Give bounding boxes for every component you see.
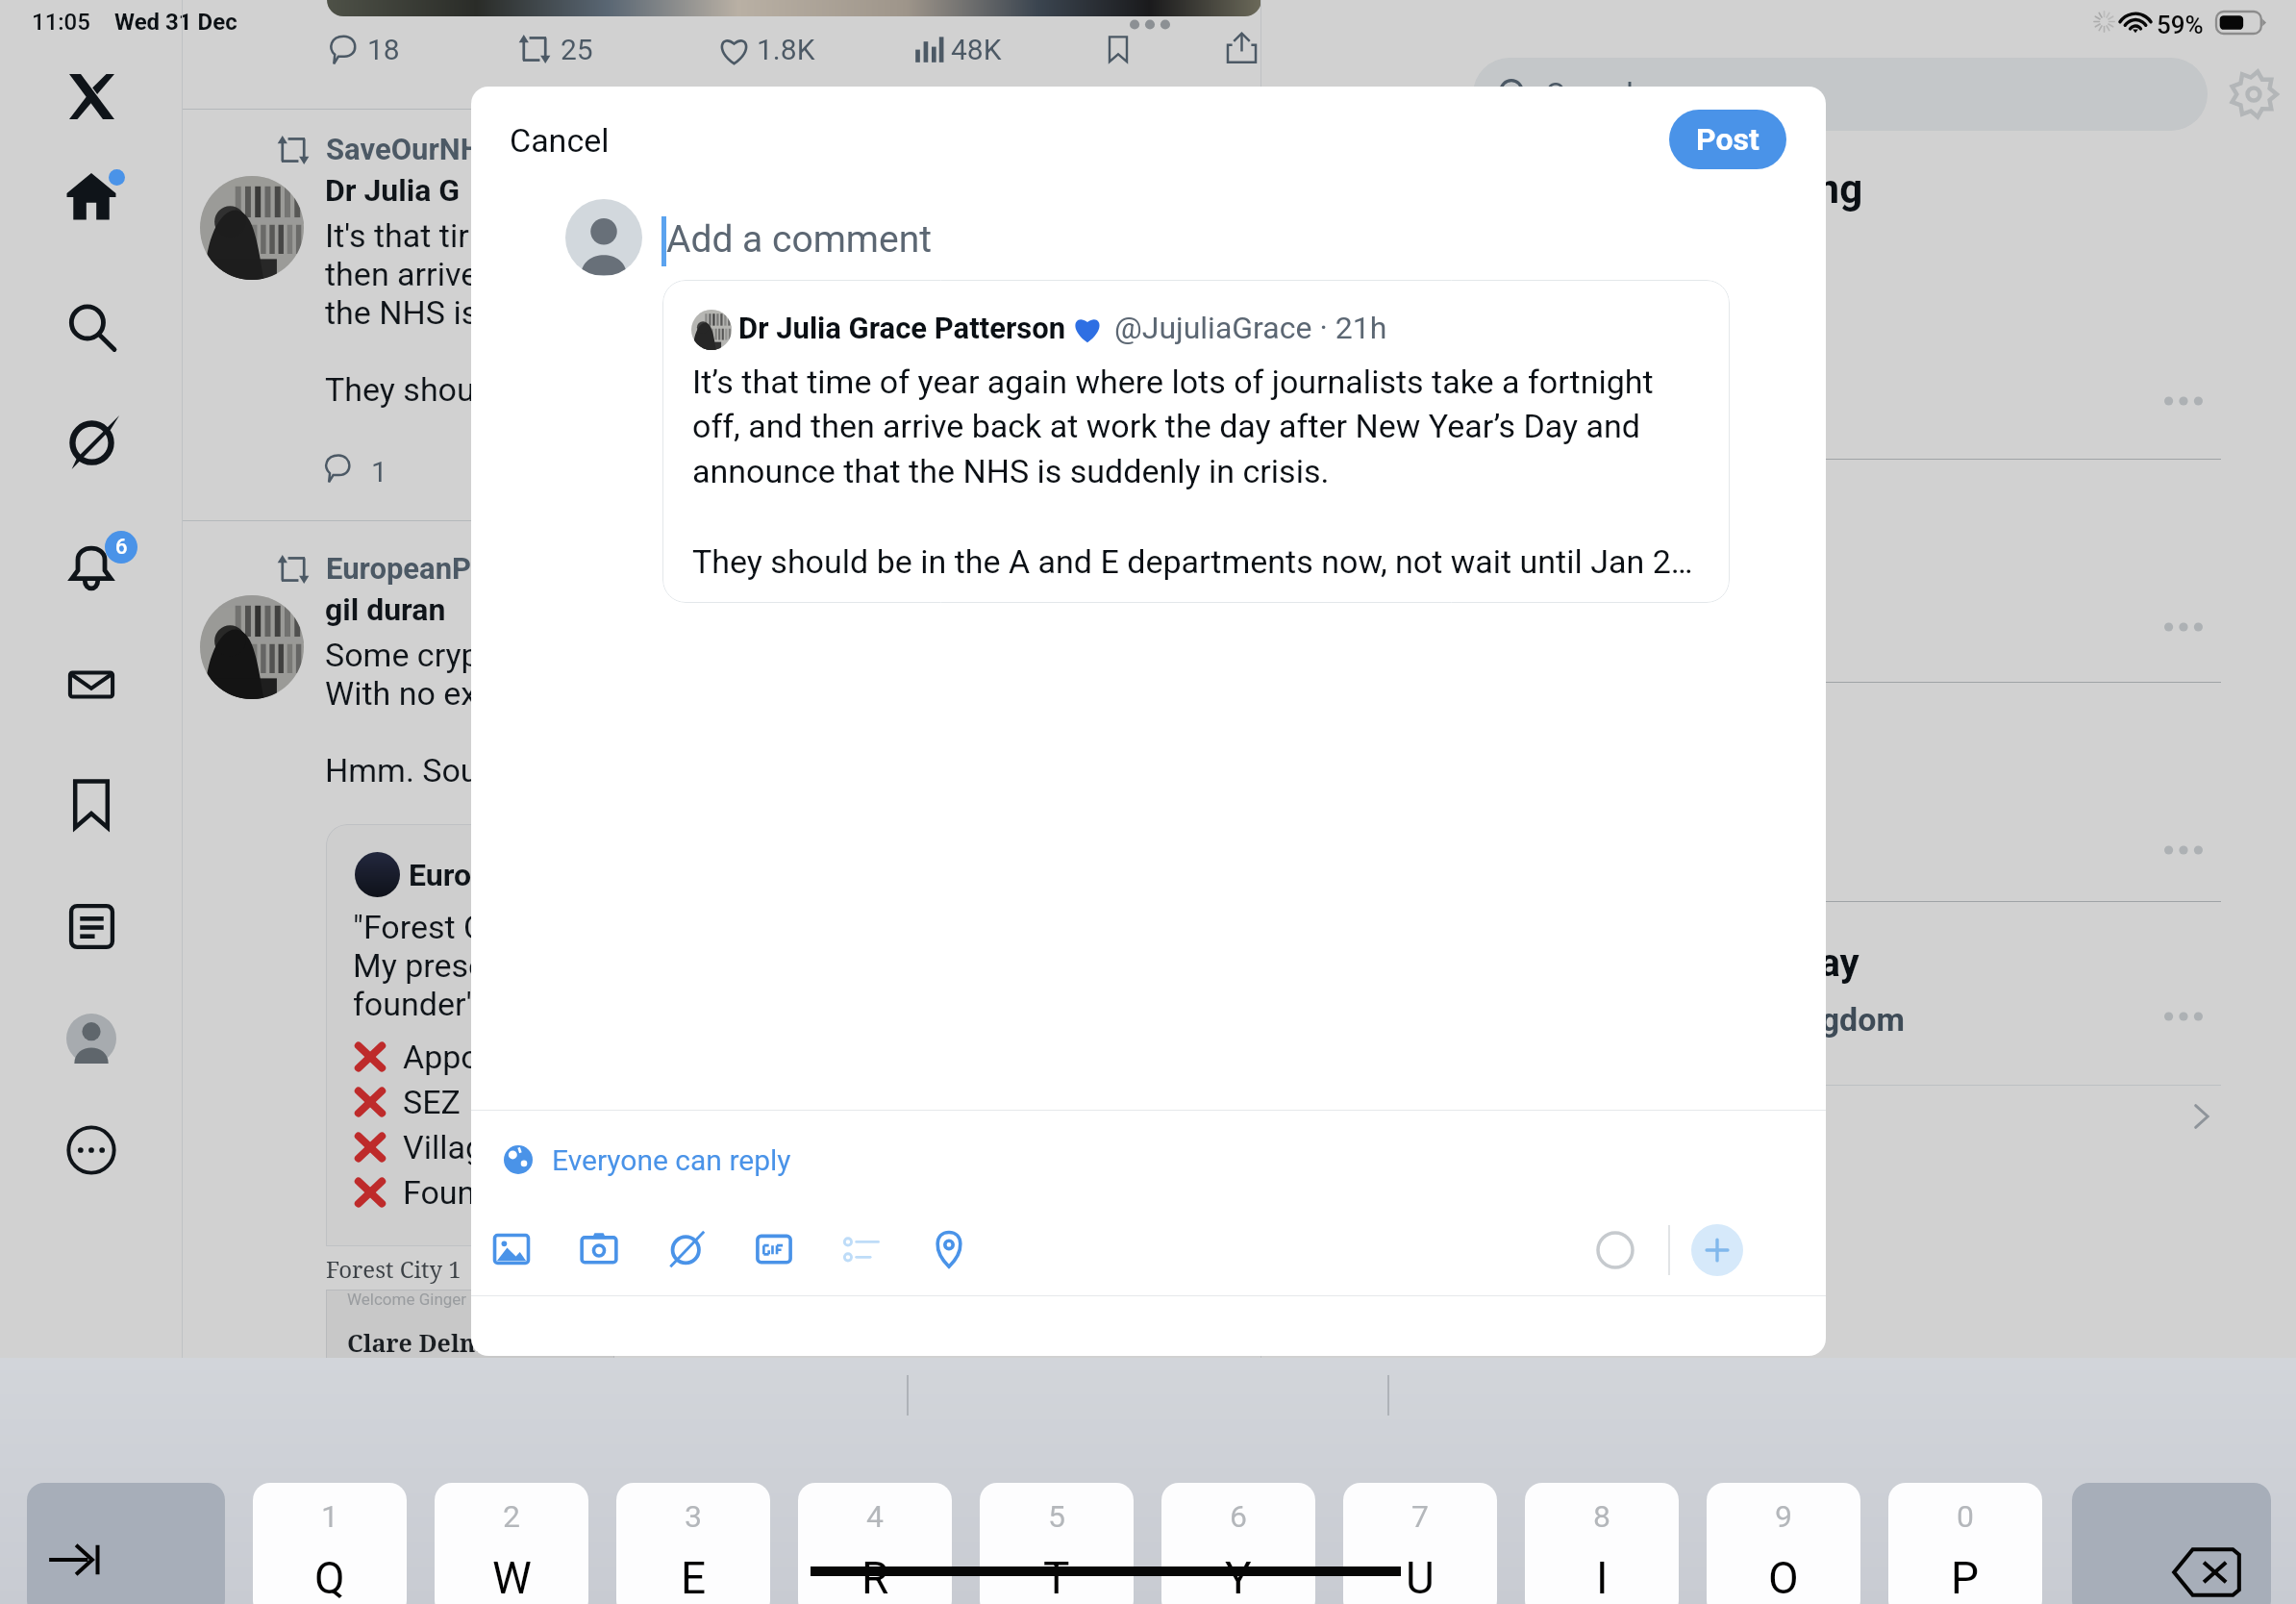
button[interactable]: Home [34,138,149,254]
staticText: 7 [1411,1498,1429,1535]
staticText: 6 [1230,1498,1247,1535]
staticText: My prese [353,946,487,985]
button[interactable]: Settings [2229,69,2279,119]
button[interactable]: Profile [34,981,149,1096]
staticText: Forest City 1 [326,1253,462,1285]
staticText: 48K [951,33,1002,66]
staticText: Appo [403,1038,480,1076]
button[interactable]: Grok [659,1221,714,1277]
staticText: Search [1546,76,1644,113]
staticText: P [1951,1552,1980,1604]
button[interactable]: 1 [253,1483,407,1604]
button[interactable]: Search [34,269,149,385]
button[interactable]: Show more [2181,1096,2221,1137]
button[interactable]: Repost [511,21,605,77]
button[interactable]: Everyone can reply [492,1131,803,1189]
staticText: Politics · Trending [1295,481,1509,513]
button[interactable]: More options [2153,603,2214,651]
button[interactable]: Tab [27,1483,225,1604]
button[interactable]: GIF [746,1221,802,1277]
staticText: 1 [321,1498,338,1535]
staticText: Sport · Trending [1295,258,1485,289]
button[interactable]: Camera [571,1221,627,1277]
button[interactable]: 2 [435,1483,588,1604]
button[interactable]: Cancel [490,104,629,177]
staticText: Wed 31 Dec [114,9,237,36]
button[interactable]: Grok [34,384,149,499]
button[interactable]: Notifications [34,507,149,622]
staticText: Foun [403,1173,476,1212]
button[interactable]: Like [710,21,827,77]
staticText: 31.2K posts [1295,566,1438,598]
staticText: 25 [561,33,593,66]
button[interactable]: Jobs [34,868,149,984]
button[interactable]: Location [921,1221,977,1277]
button[interactable]: More options [2153,826,2214,874]
button[interactable]: Sport · Trending [1295,258,2209,375]
button[interactable]: Add photo [484,1221,539,1277]
button[interactable]: 4 [798,1483,952,1604]
staticText: I [1596,1552,1609,1604]
button[interactable]: More options [2153,992,2214,1040]
staticText: They shou [325,370,475,409]
staticText: Trending in United Kingdom [1495,1000,1905,1039]
button[interactable]: Backspace [2072,1483,2271,1604]
staticText: SEZ [403,1083,469,1121]
button[interactable]: 9 [1707,1483,1860,1604]
button[interactable]: More [34,1092,149,1208]
staticText: Everyone can reply [552,1143,791,1177]
button[interactable]: Politics · Trending [1295,481,2209,598]
staticText: Cancel [510,121,610,160]
staticText: 1.8K [757,33,815,66]
button[interactable]: Post [1669,110,1786,169]
button[interactable]: Share [1219,25,1263,69]
staticText: Welcome Ginger Inserted [347,1290,531,1309]
staticText: SaveOurNH [326,132,482,166]
button[interactable]: Views [907,21,1013,77]
staticText: Europ [409,857,488,893]
button[interactable]: Search [1473,58,2208,131]
button[interactable]: Only on X · Trending [1295,700,2209,817]
staticText: "Forest C [353,908,486,946]
button[interactable]: More [1118,3,1182,45]
staticText: Some cryp [325,636,480,674]
staticText: 6 [115,535,128,560]
button[interactable]: 7 [1343,1483,1497,1604]
staticText: 11:05 [32,9,90,36]
button[interactable]: 8 [1525,1483,1679,1604]
staticText: Add a comment [666,217,933,262]
staticText: W [492,1552,532,1604]
button[interactable]: Bookmark [1096,27,1140,71]
button[interactable]: 3 [616,1483,770,1604]
button[interactable]: SaveOurNH [183,109,1261,516]
button[interactable]: Reply [320,21,412,77]
button[interactable]: Europ [326,824,1249,1246]
button[interactable]: X [34,38,149,154]
staticText: 45.8K posts [1295,343,1438,375]
button[interactable]: 5 [980,1483,1134,1604]
staticText: 9 [1775,1498,1792,1535]
button[interactable]: Messages [34,627,149,742]
staticText: Y [1225,1552,1252,1604]
button[interactable]: EuropeanP [183,528,1261,936]
button[interactable]: 0 [1888,1483,2042,1604]
button[interactable]: Dr Julia Grace Patterson [662,280,1730,603]
staticText: T [1043,1552,1070,1604]
button[interactable]: Add another post [1691,1224,1743,1276]
staticText: Q [314,1552,345,1604]
staticText: Arsenal [1295,297,1409,336]
button[interactable]: Bookmarks [34,746,149,862]
staticText: Hmm. Sou [325,751,479,789]
staticText: Villag [403,1128,485,1166]
button[interactable]: More options [2153,377,2214,425]
button[interactable]: Poll [834,1221,889,1277]
staticText: Post [1696,121,1759,158]
button[interactable]: 6 [1161,1483,1315,1604]
staticText: Trending [1701,165,1863,213]
staticText: @JujuliaGrace · 21h [1114,310,1387,346]
staticText: It’s that time of year again where lots … [692,363,1693,582]
